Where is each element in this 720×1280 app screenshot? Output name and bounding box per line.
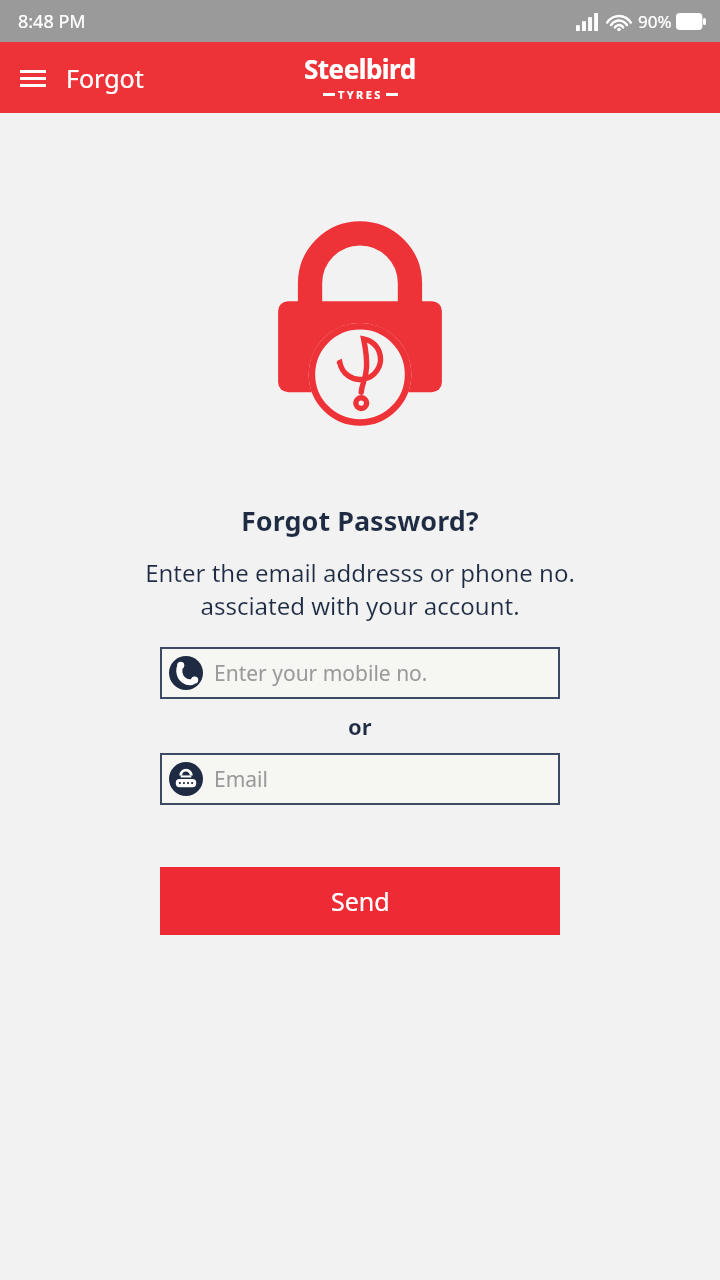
staticText: or bbox=[348, 711, 372, 741]
button[interactable]: Email bbox=[160, 753, 560, 805]
staticText: Steelbird bbox=[304, 51, 416, 86]
staticText: Forgot bbox=[66, 61, 144, 95]
staticText: Enter your mobile no. bbox=[214, 659, 428, 688]
staticText: Enter the email addresss or phone no. as… bbox=[145, 556, 575, 622]
staticText: Forgot Password? bbox=[241, 502, 479, 539]
button[interactable]: Enter your mobile no. bbox=[160, 647, 560, 699]
button[interactable]: Open navigation menu bbox=[16, 61, 50, 95]
staticText: 90% bbox=[638, 10, 672, 33]
staticText: 8:48 PM bbox=[18, 9, 86, 34]
button[interactable]: Send bbox=[160, 867, 560, 935]
staticText: TYRES bbox=[338, 87, 383, 102]
staticText: Email bbox=[214, 765, 268, 794]
staticText: Send bbox=[331, 884, 390, 918]
